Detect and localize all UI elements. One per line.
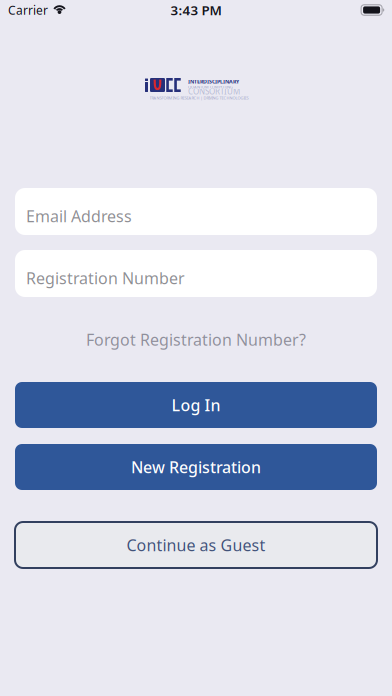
staticText: Email Address: [26, 205, 132, 227]
staticText: Registration Number: [26, 267, 185, 289]
staticText: QUANTUM COMPUTING: [188, 84, 233, 90]
button[interactable]: Log In: [15, 382, 377, 428]
staticText: Forgot Registration Number?: [86, 329, 306, 350]
staticText: Carrier: [8, 2, 48, 18]
staticText: New Registration: [131, 456, 261, 478]
button[interactable]: Forgot Registration Number?: [0, 297, 392, 382]
staticText: TRANSFORMING RESEARCH | DRIVING TECHNOLO…: [149, 95, 248, 101]
staticText: CONSORTIUM: [188, 86, 240, 97]
staticText: 3:43 PM: [170, 1, 221, 19]
staticText: Continue as Guest: [126, 534, 265, 556]
button[interactable]: New Registration: [15, 444, 377, 490]
staticText: INTERDISCIPLINARY: [188, 78, 239, 85]
button[interactable]: Continue as Guest: [15, 522, 377, 568]
staticText: Log In: [171, 394, 220, 416]
